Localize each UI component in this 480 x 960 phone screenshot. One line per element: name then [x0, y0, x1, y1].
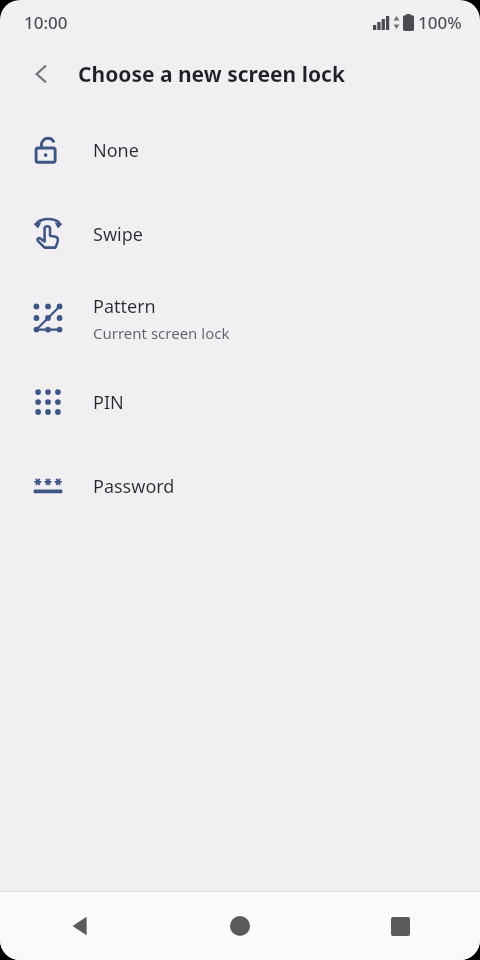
button[interactable]: Back: [14, 46, 70, 102]
staticText: PIN: [93, 390, 124, 415]
staticText: None: [93, 138, 139, 163]
staticText: Choose a new screen lock: [78, 60, 345, 89]
button[interactable]: Pattern: [0, 276, 480, 360]
button[interactable]: Home: [160, 892, 320, 960]
staticText: Current screen lock: [93, 323, 230, 343]
staticText: 100%: [418, 11, 462, 34]
button[interactable]: Back: [0, 892, 160, 960]
staticText: Pattern: [93, 294, 156, 319]
button[interactable]: Password: [0, 444, 480, 528]
staticText: Password: [93, 474, 175, 499]
button[interactable]: Swipe: [0, 192, 480, 276]
staticText: 10:00: [24, 11, 68, 34]
button[interactable]: Recent apps: [320, 892, 480, 960]
staticText: Swipe: [93, 222, 143, 247]
button[interactable]: None: [0, 108, 480, 192]
button[interactable]: PIN: [0, 360, 480, 444]
